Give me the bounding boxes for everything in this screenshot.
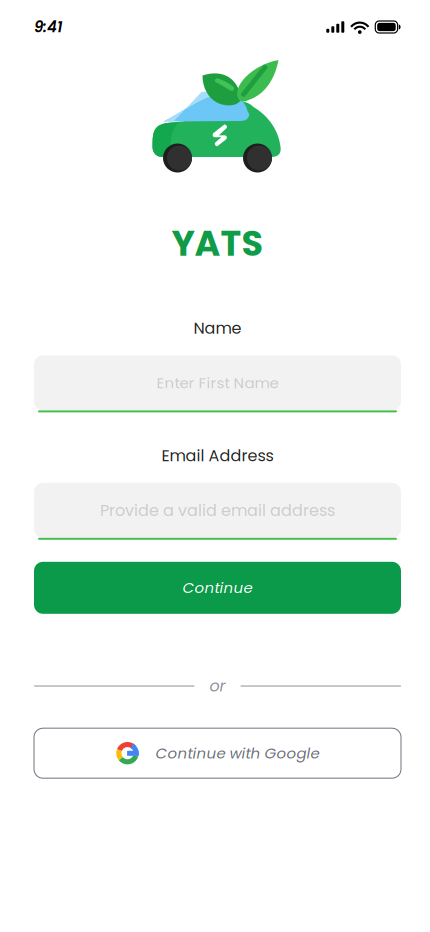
button[interactable]: Provide a valid email address — [34, 483, 401, 540]
staticText: Provide a valid email address — [100, 499, 335, 521]
staticText: or — [209, 675, 225, 697]
staticText: 9:41 — [34, 16, 62, 37]
staticText: Continue with Google — [155, 743, 319, 764]
staticText: Email Address — [161, 444, 273, 467]
button[interactable]: Continue — [34, 562, 401, 614]
staticText: Enter First Name — [156, 372, 278, 393]
button[interactable]: Continue with Google — [34, 728, 401, 778]
button[interactable]: Enter First Name — [34, 355, 401, 412]
staticText: Name — [193, 317, 241, 339]
staticText: YATS — [171, 219, 263, 268]
staticText: Continue — [182, 577, 252, 598]
